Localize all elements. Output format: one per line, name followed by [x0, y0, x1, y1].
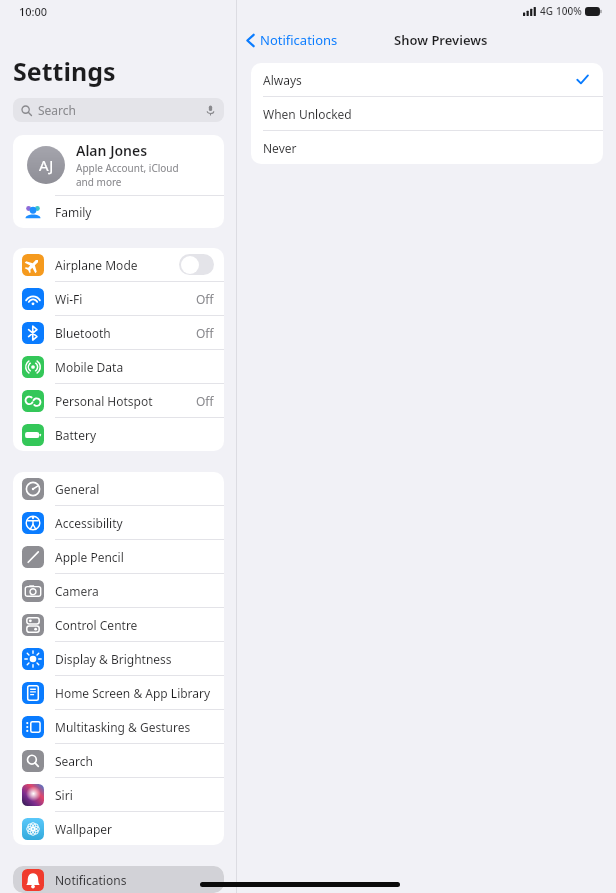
staticText: 4G — [540, 4, 553, 18]
staticText: Off — [196, 393, 214, 409]
button[interactable]: Wi-Fi — [13, 282, 224, 315]
staticText: Show Previews — [394, 31, 488, 49]
button[interactable]: Notifications — [243, 28, 341, 52]
button[interactable]: Personal Hotspot — [13, 384, 224, 417]
staticText: and more — [76, 175, 122, 189]
button[interactable]: Never — [251, 131, 603, 164]
staticText: Wallpaper — [55, 821, 214, 837]
staticText: Settings — [13, 54, 116, 88]
button[interactable]: Display & Brightness — [13, 642, 224, 675]
button[interactable]: Always — [251, 63, 603, 96]
staticText: Accessibility — [55, 515, 214, 531]
staticText: Battery — [55, 427, 214, 443]
staticText: Apple Account, iCloud — [76, 161, 179, 175]
button[interactable]: General — [13, 472, 224, 505]
button[interactable]: Family — [13, 196, 224, 228]
staticText: 100% — [556, 4, 582, 18]
button[interactable]: Notifications — [13, 866, 224, 893]
button[interactable]: Battery — [13, 418, 224, 451]
staticText: Personal Hotspot — [55, 393, 196, 409]
staticText: AJ — [39, 155, 54, 175]
staticText: When Unlocked — [263, 106, 589, 122]
button[interactable]: AJ — [13, 135, 224, 195]
button[interactable]: Search — [13, 744, 224, 777]
button[interactable]: Apple Pencil — [13, 540, 224, 573]
button[interactable]: Wallpaper — [13, 812, 224, 845]
staticText: Never — [263, 140, 589, 156]
staticText: Mobile Data — [55, 359, 214, 375]
button[interactable]: Mobile Data — [13, 350, 224, 383]
staticText: Notifications — [55, 872, 214, 888]
staticText: Wi-Fi — [55, 291, 196, 307]
staticText: Alan Jones — [76, 141, 148, 160]
staticText: Off — [196, 291, 214, 307]
button[interactable]: Multitasking & Gestures — [13, 710, 224, 743]
staticText: Home Screen & App Library — [55, 685, 214, 701]
staticText: Off — [196, 325, 214, 341]
staticText: Multitasking & Gestures — [55, 719, 214, 735]
button[interactable]: Search — [13, 98, 224, 122]
button[interactable]: Airplane Mode toggle — [179, 254, 214, 275]
staticText: Family — [55, 204, 92, 220]
staticText: Notifications — [260, 31, 338, 49]
staticText: Display & Brightness — [55, 651, 214, 667]
button[interactable]: Camera — [13, 574, 224, 607]
button[interactable]: Airplane Mode — [13, 248, 224, 281]
staticText: Search — [55, 753, 214, 769]
staticText: Control Centre — [55, 617, 214, 633]
staticText: Apple Pencil — [55, 549, 214, 565]
staticText: Airplane Mode — [55, 257, 179, 273]
button[interactable]: Bluetooth — [13, 316, 224, 349]
staticText: Camera — [55, 583, 214, 599]
button[interactable]: Control Centre — [13, 608, 224, 641]
staticText: Bluetooth — [55, 325, 196, 341]
button[interactable]: Accessibility — [13, 506, 224, 539]
button[interactable]: Home Screen & App Library — [13, 676, 224, 709]
button[interactable]: Siri — [13, 778, 224, 811]
staticText: Always — [263, 72, 576, 88]
button[interactable]: When Unlocked — [251, 97, 603, 130]
staticText: Siri — [55, 787, 214, 803]
staticText: 10:00 — [19, 4, 48, 19]
staticText: Search — [38, 102, 205, 118]
staticText: General — [55, 481, 214, 497]
